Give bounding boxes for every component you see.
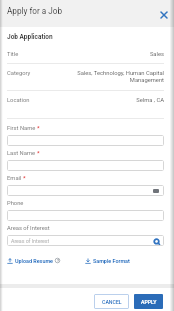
staticText: Sales, Technology, Human Capital <box>47 70 164 77</box>
staticText: Management <box>47 77 164 84</box>
staticText: Last Name <box>7 150 36 157</box>
staticText: ? <box>57 258 59 263</box>
staticText: Areas of Interest <box>11 238 50 244</box>
staticText: Sales <box>47 51 164 58</box>
staticText: * <box>37 125 40 132</box>
staticText: Location <box>7 97 47 104</box>
button[interactable]: Close <box>157 7 171 21</box>
staticText: Upload Resume <box>15 258 53 264</box>
staticText: First Name <box>7 125 36 132</box>
button[interactable]: Help <box>54 257 61 264</box>
button[interactable]: Upload Resume <box>6 258 54 264</box>
staticText: Job Application <box>7 33 53 41</box>
staticText: CANCEL <box>102 299 122 305</box>
staticText: Selma , CA <box>47 97 164 104</box>
staticText: Apply for a Job <box>7 6 63 16</box>
staticText: Phone <box>7 200 24 207</box>
button[interactable] <box>7 135 164 146</box>
staticText: Areas of Interest <box>7 225 50 232</box>
button[interactable]: CANCEL <box>94 294 129 309</box>
staticText: Title <box>7 51 47 58</box>
staticText: Category <box>7 70 47 77</box>
button[interactable] <box>7 210 164 221</box>
button[interactable]: Areas of Interest <box>7 235 164 246</box>
staticText: Email <box>7 175 22 182</box>
button[interactable] <box>7 185 164 196</box>
staticText: * <box>37 150 40 157</box>
button[interactable] <box>7 160 164 171</box>
staticText: * <box>23 175 26 182</box>
button[interactable]: Sample Format <box>84 258 131 264</box>
button[interactable]: APPLY <box>134 294 163 309</box>
staticText: Sample Format <box>93 258 130 264</box>
staticText: APPLY <box>141 299 157 305</box>
